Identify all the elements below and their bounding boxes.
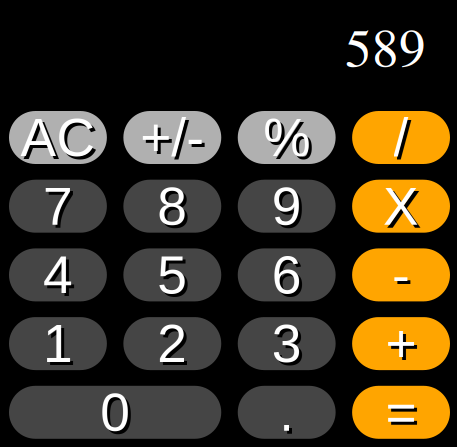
button[interactable]: 3 [238, 317, 336, 370]
staticText: 9 [272, 176, 302, 236]
button[interactable]: - [352, 248, 450, 301]
button[interactable]: = [352, 386, 450, 439]
staticText: 4 [43, 245, 73, 305]
button[interactable]: 7 [9, 180, 107, 233]
staticText: . [282, 385, 297, 445]
staticText: / [394, 108, 409, 167]
staticText: 1 [46, 317, 76, 376]
button[interactable]: 0 [9, 386, 221, 439]
staticText: = [386, 382, 417, 442]
staticText: +/- [140, 108, 204, 167]
staticText: 0 [100, 382, 130, 442]
staticText: X [383, 176, 419, 236]
button[interactable]: 5 [123, 248, 221, 301]
staticText: 6 [275, 248, 305, 308]
button[interactable]: AC [9, 111, 107, 164]
staticText: + [389, 317, 420, 376]
button[interactable]: 6 [238, 248, 336, 301]
button[interactable]: +/- [123, 111, 221, 164]
button[interactable]: 8 [123, 180, 221, 233]
button[interactable]: 2 [123, 317, 221, 370]
staticText: 8 [160, 179, 190, 239]
staticText: 5 [157, 245, 187, 305]
staticText: 2 [157, 314, 187, 373]
staticText: 4 [46, 248, 76, 308]
staticText: . [279, 382, 294, 442]
staticText: = [389, 385, 420, 445]
staticText: 1 [43, 314, 73, 373]
staticText: - [392, 245, 410, 305]
staticText: AC [20, 108, 95, 167]
staticText: 5 [160, 248, 190, 308]
button[interactable]: 1 [9, 317, 107, 370]
staticText: % [263, 108, 310, 167]
staticText: 7 [43, 176, 73, 236]
staticText: / [397, 111, 412, 170]
button[interactable]: . [238, 386, 336, 439]
staticText: 0 [103, 385, 133, 445]
button[interactable]: % [238, 111, 336, 164]
staticText: 9 [275, 179, 305, 239]
staticText: 3 [275, 317, 305, 376]
staticText: - [395, 248, 413, 308]
staticText: % [266, 111, 313, 170]
button[interactable]: / [352, 111, 450, 164]
button[interactable]: 9 [238, 180, 336, 233]
staticText: X [386, 179, 422, 239]
staticText: 2 [160, 317, 190, 376]
staticText: 3 [272, 314, 302, 373]
staticText: 6 [272, 245, 302, 305]
button[interactable]: 4 [9, 248, 107, 301]
staticText: +/- [143, 111, 207, 170]
staticText: + [386, 314, 417, 373]
button[interactable]: + [352, 317, 450, 370]
staticText: 8 [157, 176, 187, 236]
staticText: 589 [345, 10, 426, 81]
staticText: AC [23, 111, 98, 170]
button[interactable]: X [352, 180, 450, 233]
staticText: 7 [46, 179, 76, 239]
